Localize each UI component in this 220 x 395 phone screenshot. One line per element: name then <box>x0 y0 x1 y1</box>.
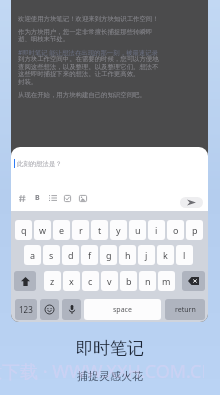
staticText: space <box>113 305 132 315</box>
staticText: o <box>173 224 179 236</box>
button[interactable]: f <box>81 245 98 265</box>
button[interactable]: space <box>84 299 161 320</box>
button[interactable]: s <box>43 245 60 265</box>
staticText: 逝、细枝末节处。 <box>18 35 70 43</box>
staticText: q <box>21 224 27 236</box>
staticText: 捕捉灵感火花 <box>77 369 143 383</box>
button[interactable]: m <box>158 271 175 291</box>
button[interactable]: e <box>53 220 70 240</box>
staticText: u <box>135 224 141 236</box>
staticText: B <box>35 193 40 203</box>
button[interactable]: Checklist <box>60 191 75 205</box>
button[interactable]: o <box>167 220 184 240</box>
staticText: return <box>175 305 196 315</box>
staticText: 到方块工作空间中。在需要的时候，您可以方便地 <box>18 55 159 63</box>
button[interactable]: k <box>157 245 174 265</box>
staticText: h <box>125 249 131 261</box>
staticText: 此刻的想法是？ <box>17 160 62 168</box>
button[interactable]: j <box>138 245 155 265</box>
button[interactable]: c <box>82 271 99 291</box>
staticText: 意下载 · WWW.XXH.COM.CN <box>0 359 204 384</box>
staticText: y <box>116 224 121 236</box>
button[interactable]: h <box>119 245 136 265</box>
button[interactable]: w <box>34 220 51 240</box>
button[interactable]: g <box>100 245 117 265</box>
button[interactable]: u <box>129 220 146 240</box>
staticText: z <box>50 275 55 287</box>
staticText: 123 <box>19 304 33 315</box>
staticText: n <box>145 275 151 287</box>
staticText: x <box>69 275 74 287</box>
staticText: e <box>59 224 65 236</box>
button[interactable]: Image <box>75 191 90 205</box>
staticText: g <box>106 249 112 261</box>
button[interactable]: v <box>101 271 118 291</box>
staticText: r <box>79 224 83 236</box>
button[interactable]: d <box>62 245 79 265</box>
button[interactable]: l <box>176 245 193 265</box>
staticText: c <box>88 275 93 287</box>
staticText: 从现在开始，用方块构建自己的知识空间吧。 <box>18 91 146 99</box>
staticText: m <box>162 275 171 287</box>
button[interactable]: Bold <box>30 191 45 205</box>
button[interactable]: a <box>24 245 41 265</box>
button[interactable]: y <box>110 220 127 240</box>
staticText: a <box>30 249 36 261</box>
staticText: 查阅这些想法，以及整理。以及整理它们。想法不 <box>18 63 159 71</box>
button[interactable]: Heading <box>15 191 30 205</box>
button[interactable]: List <box>45 191 60 205</box>
staticText: 这些即时捕捉下来的想法。让工作更高效。 <box>18 70 140 78</box>
staticText: #即时笔记 能让想法在出现的那一刻，被最速记录 <box>18 48 158 57</box>
button[interactable]: Emoji <box>40 299 59 320</box>
staticText: j <box>145 249 148 261</box>
button[interactable]: z <box>44 271 61 291</box>
button[interactable]: Send <box>180 197 203 208</box>
staticText: i <box>155 224 158 236</box>
staticText: 即时笔记 <box>76 338 144 359</box>
staticText: d <box>68 249 74 261</box>
button[interactable]: n <box>139 271 156 291</box>
staticText: f <box>88 249 92 261</box>
button[interactable]: Shift <box>14 271 36 291</box>
button[interactable]: return <box>165 299 205 320</box>
staticText: t <box>98 224 102 236</box>
staticText: k <box>163 249 168 261</box>
button[interactable]: Backspace <box>182 271 205 291</box>
button[interactable]: Voice <box>62 299 81 320</box>
staticText: w <box>39 224 47 236</box>
button[interactable]: t <box>91 220 108 240</box>
staticText: v <box>107 275 112 287</box>
button[interactable]: q <box>15 220 32 240</box>
staticText: b <box>126 275 132 287</box>
button[interactable]: i <box>148 220 165 240</box>
button[interactable]: r <box>72 220 89 240</box>
button[interactable]: p <box>186 220 203 240</box>
staticText: p <box>192 224 198 236</box>
button[interactable]: 123 <box>15 299 37 320</box>
staticText: s <box>49 249 54 261</box>
staticText: 欢迎使用方块笔记！欢迎来到方块知识工作空间！ <box>18 15 159 23</box>
button[interactable]: x <box>63 271 80 291</box>
staticText: 封装。 <box>18 78 38 86</box>
button[interactable]: b <box>120 271 137 291</box>
staticText: l <box>183 249 186 261</box>
staticText: 作为方块用户，您一定非常擅长捕捉那些转瞬即 <box>18 28 153 36</box>
